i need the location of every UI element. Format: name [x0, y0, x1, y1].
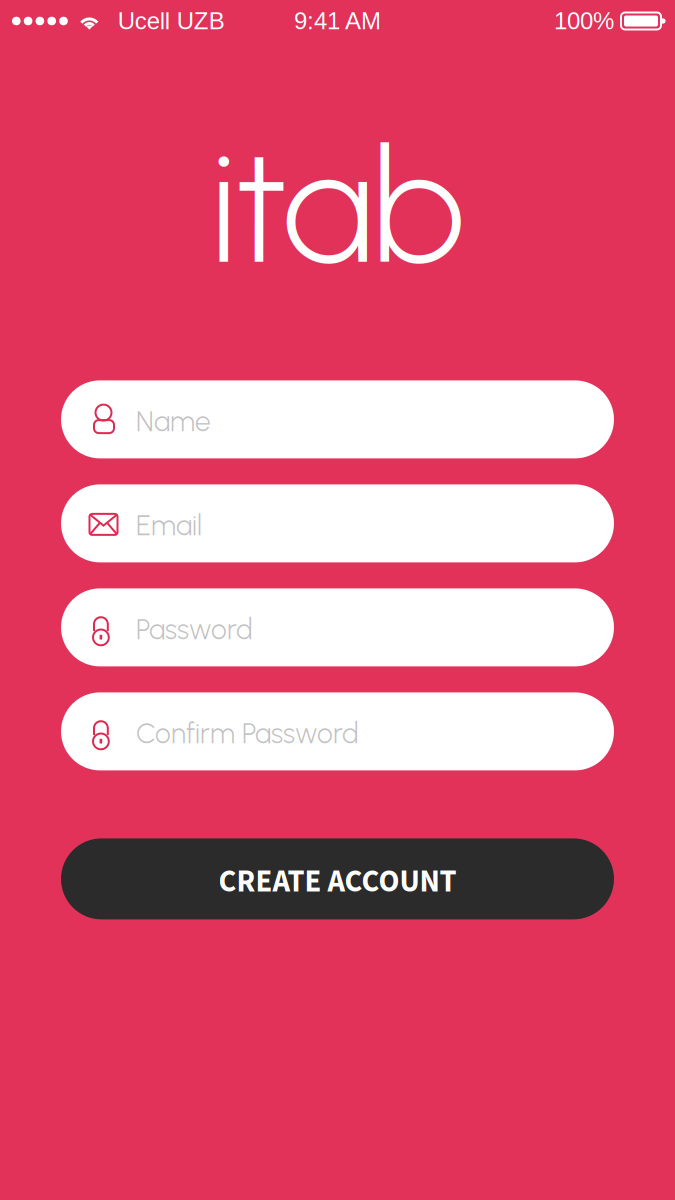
button[interactable]: Confirm Password [61, 692, 614, 770]
staticText: 100% [554, 8, 614, 34]
button[interactable]: Email [61, 484, 614, 562]
staticText: Name [136, 405, 211, 438]
button[interactable]: CREATE ACCOUNT [61, 838, 614, 919]
staticText: 9:41 AM [294, 8, 381, 34]
staticText: CREATE ACCOUNT [218, 860, 456, 904]
staticText: Password [136, 613, 253, 646]
staticText: Ucell UZB [118, 8, 225, 34]
staticText: Email [136, 509, 202, 542]
button[interactable]: Name [61, 380, 614, 458]
staticText: itab [210, 111, 465, 301]
button[interactable]: Password [61, 588, 614, 666]
staticText: Confirm Password [136, 717, 359, 750]
